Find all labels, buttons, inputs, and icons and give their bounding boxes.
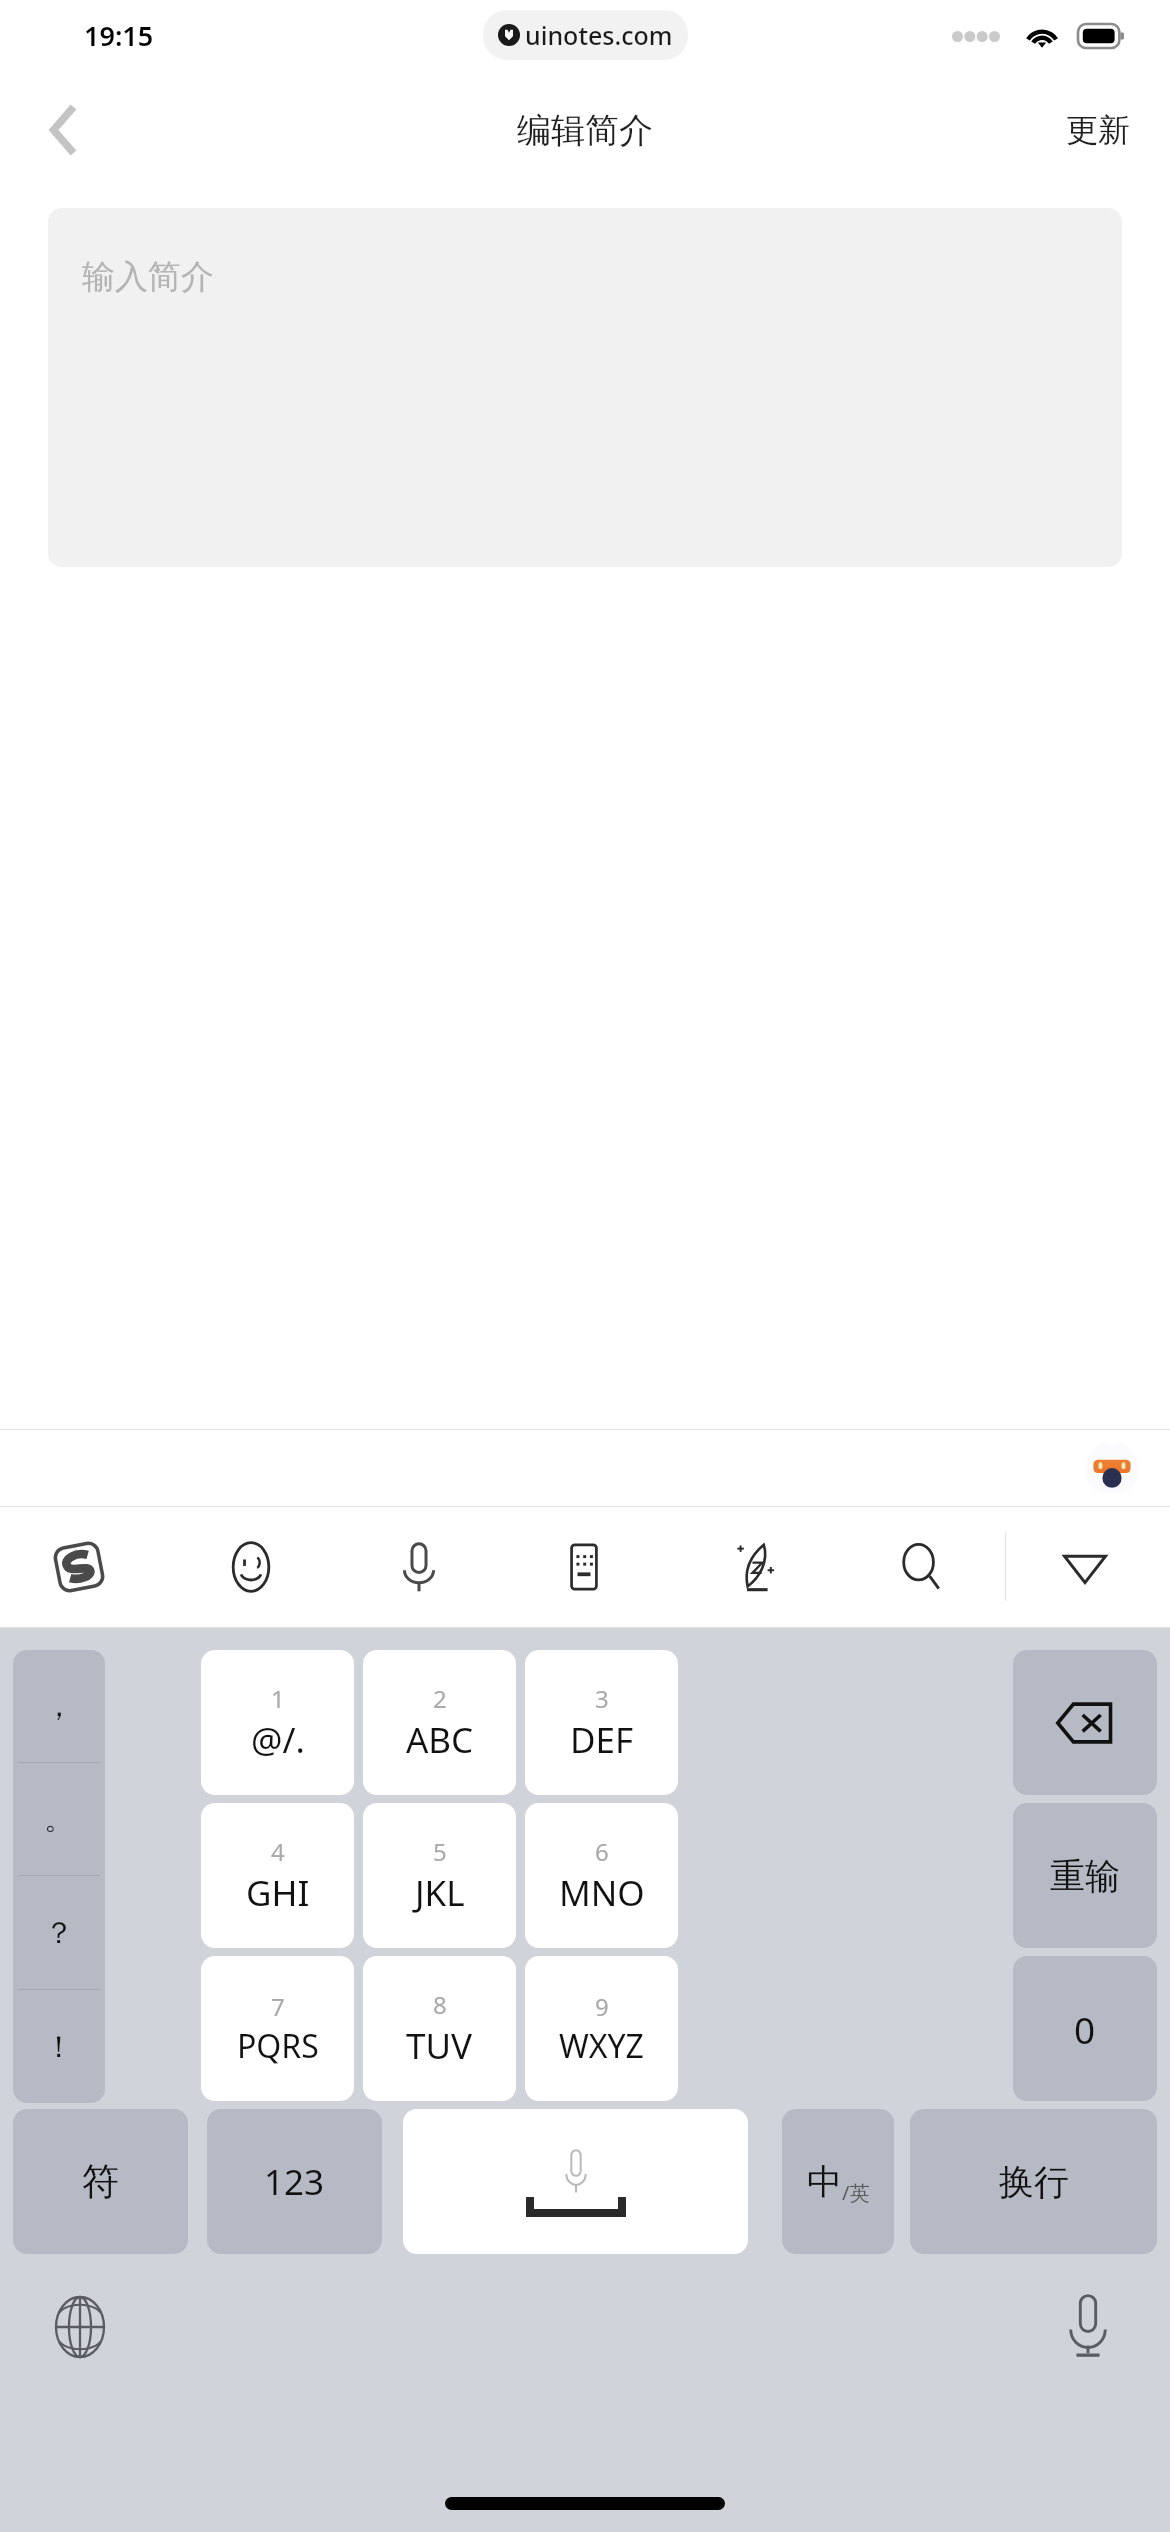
button[interactable]: 换行 bbox=[910, 2109, 1157, 2254]
button[interactable]: 中 bbox=[782, 2109, 894, 2254]
staticText: 0 bbox=[1074, 2004, 1096, 2054]
button[interactable]: 输入简介 bbox=[48, 208, 1122, 567]
staticText: 换行 bbox=[999, 2160, 1069, 2204]
button[interactable]: 0 bbox=[1013, 1956, 1157, 2101]
staticText: 4 bbox=[271, 1835, 285, 1868]
button[interactable]: Handwriting bbox=[714, 1528, 792, 1606]
staticText: 。 bbox=[44, 1800, 74, 1838]
button[interactable]: 123 bbox=[207, 2109, 382, 2254]
button[interactable]: Punctuation bbox=[13, 1650, 105, 2103]
staticText: ！ bbox=[44, 2028, 74, 2066]
staticText: ， bbox=[44, 1687, 74, 1725]
button[interactable]: Voice dictation bbox=[1044, 2283, 1132, 2371]
staticText: 中 bbox=[807, 2160, 842, 2204]
staticText: 8 bbox=[433, 1988, 447, 2021]
button[interactable]: 更新 bbox=[1054, 96, 1142, 164]
button[interactable]: 2 bbox=[363, 1650, 516, 1795]
staticText: PQRS bbox=[237, 2024, 319, 2068]
staticText: 编辑简介 bbox=[517, 109, 653, 152]
staticText: 9 bbox=[595, 1990, 609, 2023]
button[interactable]: Switch language bbox=[36, 2283, 124, 2371]
button[interactable]: 4 bbox=[201, 1803, 354, 1948]
staticText: /英 bbox=[842, 2179, 870, 2206]
staticText: ABC bbox=[406, 1716, 474, 1764]
staticText: 5 bbox=[433, 1835, 447, 1868]
button[interactable]: Hide keyboard bbox=[1046, 1528, 1124, 1606]
button[interactable]: 5 bbox=[363, 1803, 516, 1948]
staticText: ？ bbox=[44, 1914, 74, 1952]
button[interactable]: 7 bbox=[201, 1956, 354, 2101]
staticText: 符 bbox=[82, 2158, 119, 2205]
staticText: 重输 bbox=[1050, 1854, 1120, 1898]
button[interactable]: 3 bbox=[525, 1650, 678, 1795]
staticText: MNO bbox=[559, 1869, 645, 1917]
staticText: 19:15 bbox=[84, 17, 154, 54]
staticText: 1 bbox=[271, 1682, 285, 1715]
button[interactable]: 符 bbox=[13, 2109, 188, 2254]
button[interactable]: 9 bbox=[525, 1956, 678, 2101]
button[interactable]: Voice input bbox=[380, 1528, 458, 1606]
button[interactable]: Emoji bbox=[212, 1528, 290, 1606]
button[interactable]: 6 bbox=[525, 1803, 678, 1948]
button[interactable]: Assistant bbox=[1080, 1436, 1144, 1500]
staticText: 更新 bbox=[1066, 110, 1130, 150]
staticText: 6 bbox=[595, 1835, 609, 1868]
button[interactable]: Space bbox=[403, 2109, 748, 2254]
staticText: 3 bbox=[595, 1682, 609, 1715]
button[interactable]: 重输 bbox=[1013, 1803, 1157, 1948]
button[interactable]: Sogou bbox=[40, 1528, 118, 1606]
staticText: JKL bbox=[415, 1869, 465, 1917]
button[interactable]: Keyboard layout bbox=[545, 1528, 623, 1606]
staticText: DEF bbox=[570, 1716, 634, 1764]
staticText: 输入简介 bbox=[82, 256, 214, 298]
staticText: 123 bbox=[264, 2158, 325, 2206]
button[interactable]: 8 bbox=[363, 1956, 516, 2101]
staticText: uinotes.com bbox=[525, 18, 673, 52]
staticText: GHI bbox=[246, 1869, 310, 1917]
button[interactable]: Backspace bbox=[1013, 1650, 1157, 1795]
button[interactable]: Back bbox=[16, 83, 110, 177]
button[interactable]: Search bbox=[882, 1528, 960, 1606]
staticText: @/. bbox=[251, 1716, 305, 1764]
staticText: WXYZ bbox=[559, 2024, 644, 2068]
staticText: TUV bbox=[406, 2022, 473, 2070]
staticText: 7 bbox=[271, 1990, 285, 2023]
staticText: 2 bbox=[433, 1682, 447, 1715]
button[interactable]: 1 bbox=[201, 1650, 354, 1795]
